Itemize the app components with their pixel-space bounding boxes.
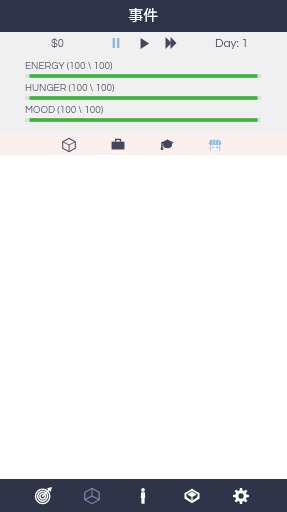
button[interactable]: Items (57, 134, 81, 155)
staticText: Day: 1 (215, 37, 249, 49)
button[interactable]: Inventory (73, 479, 110, 512)
button[interactable]: Study (154, 134, 178, 155)
staticText: $0 (51, 38, 64, 49)
button[interactable]: $0 (43, 32, 71, 54)
staticText: HUNGER (100 \ 100) (25, 83, 115, 93)
button[interactable]: Open box (173, 479, 210, 512)
button[interactable]: Pause (106, 32, 126, 54)
button[interactable]: Play (134, 32, 154, 54)
button[interactable]: Goals (25, 479, 62, 512)
staticText: MOOD (100 \ 100) (25, 105, 104, 115)
button[interactable]: Work (106, 134, 130, 155)
button[interactable]: Fast forward (161, 32, 181, 54)
button[interactable]: Shop (203, 134, 227, 155)
button[interactable]: Character (124, 479, 161, 512)
button[interactable]: Settings (222, 479, 259, 512)
staticText: 事件 (128, 4, 159, 26)
staticText: ENERGY (100 \ 100) (25, 61, 113, 71)
